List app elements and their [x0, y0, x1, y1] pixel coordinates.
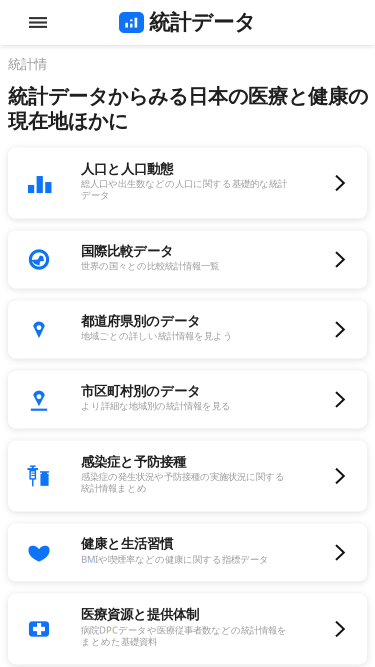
- staticText: 都道府県別のデータ: [81, 313, 201, 329]
- button[interactable]: 医療資源と提供体制: [8, 593, 367, 664]
- staticText: 地域ごとの詳しい統計情報を見よう: [81, 330, 233, 342]
- staticText: 統計データからみる日本の医療と健康の現在地ほかに: [8, 84, 368, 133]
- button[interactable]: 感染症と予防接種: [8, 440, 367, 511]
- button[interactable]: 健康と生活習慣: [8, 523, 367, 581]
- staticText: 健康と生活習慣: [81, 536, 173, 552]
- button[interactable]: Menu: [0, 0, 47, 45]
- staticText: 感染症と予防接種: [81, 454, 186, 470]
- staticText: BMIや喫煙率などの健康に関する指標データ: [81, 553, 269, 565]
- staticText: 世界の国々との比較統計情報一覧: [81, 260, 219, 272]
- button[interactable]: 人口と人口動態: [8, 147, 367, 218]
- button[interactable]: 都道府県別のデータ: [8, 300, 367, 358]
- staticText: 総人口や出生数などの人口に関する基礎的な統計データ: [81, 178, 287, 201]
- staticText: 病院DPCデータや医療従事者数などの統計情報をまとめた基礎資料: [81, 624, 287, 648]
- button[interactable]: 国際比較データ: [8, 230, 367, 288]
- button[interactable]: 市区町村別のデータ: [8, 370, 367, 428]
- staticText: より詳細な地域別の統計情報を見る: [81, 400, 231, 412]
- staticText: 統計情: [8, 56, 47, 72]
- staticText: 医療資源と提供体制: [81, 606, 199, 623]
- staticText: 市区町村別のデータ: [81, 383, 201, 399]
- staticText: 国際比較データ: [81, 243, 174, 259]
- staticText: 人口と人口動態: [81, 161, 173, 177]
- staticText: 統計データ: [149, 9, 256, 36]
- staticText: 感染症の発生状況や予防接種の実施状況に関する統計情報まとめ: [81, 471, 285, 494]
